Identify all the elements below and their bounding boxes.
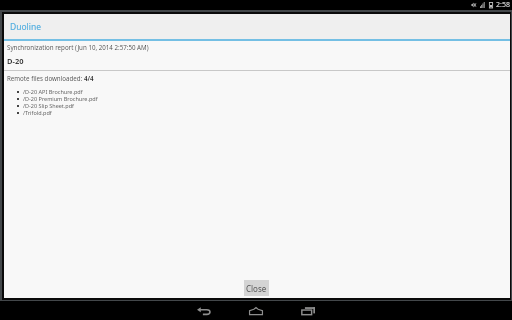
staticText: /D-20 Slip Sheet.pdf [23, 102, 74, 109]
staticText: Duoline [10, 21, 42, 33]
button[interactable]: Close [244, 280, 269, 296]
button[interactable]: Back [178, 301, 230, 320]
staticText: D-20 [7, 56, 24, 66]
staticText: Synchronization report (Jun 10, 2014 2:5… [7, 43, 149, 51]
staticText: /Trifold.pdf [23, 109, 52, 116]
staticText: 2:58 [496, 0, 510, 10]
staticText: Remote files downloaded: [7, 74, 84, 82]
staticText: /D-20 API Brochure.pdf [23, 88, 83, 95]
button[interactable]: Home [230, 301, 282, 320]
button[interactable]: Recent apps [282, 301, 334, 320]
staticText: 4/4 [84, 74, 94, 82]
staticText: /D-20 Premium Brochure.pdf [23, 95, 98, 102]
staticText: Close [246, 283, 267, 294]
